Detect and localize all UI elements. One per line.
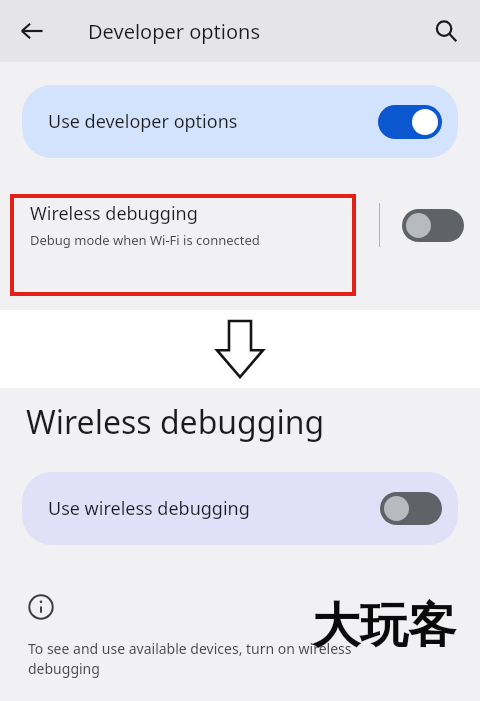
staticText: Wireless debugging <box>30 201 198 226</box>
staticText: Debug mode when Wi-Fi is connected <box>30 231 260 249</box>
staticText: 大玩客 <box>312 596 456 656</box>
staticText: Use developer options <box>48 109 378 134</box>
staticText: To see and use available devices, turn o… <box>28 639 352 678</box>
button[interactable]: Back <box>8 7 56 55</box>
button[interactable]: Wireless debugging <box>0 180 480 270</box>
button[interactable]: Use developer options <box>22 85 458 158</box>
staticText: Developer options <box>88 18 261 45</box>
button[interactable]: Wireless debugging off <box>402 209 464 242</box>
button[interactable]: Use wireless debugging <box>22 472 458 545</box>
button[interactable]: Search <box>422 7 470 55</box>
button[interactable]: Switch on <box>378 105 442 139</box>
staticText: Use wireless debugging <box>48 496 380 521</box>
button[interactable]: Use wireless debugging off <box>380 492 442 525</box>
staticText: Wireless debugging <box>26 400 325 444</box>
